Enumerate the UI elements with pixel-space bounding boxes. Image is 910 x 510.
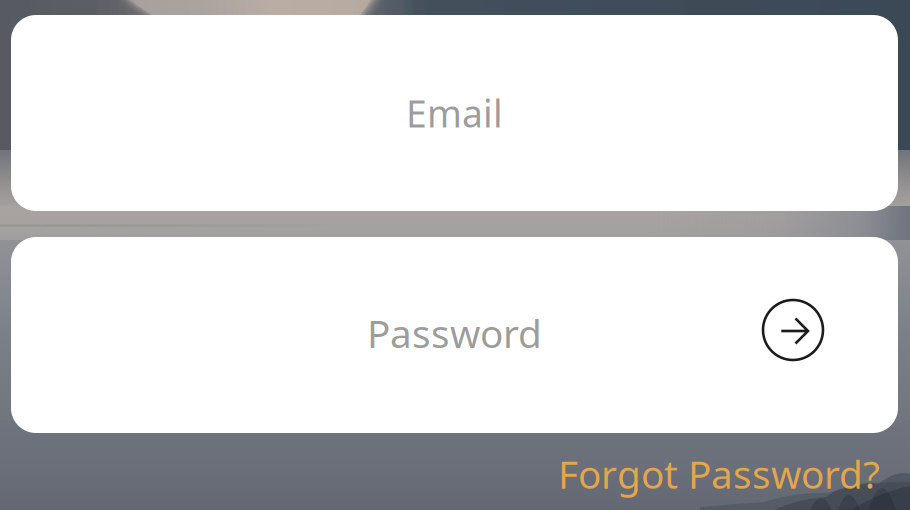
button[interactable]: Email [11,15,898,211]
staticText: Email [406,88,503,138]
button[interactable]: Forgot Password? [558,448,880,499]
button[interactable]: Password [11,237,898,433]
staticText: Forgot Password? [558,448,880,499]
staticText: Password [367,307,542,359]
button[interactable]: Sign in [763,300,823,360]
